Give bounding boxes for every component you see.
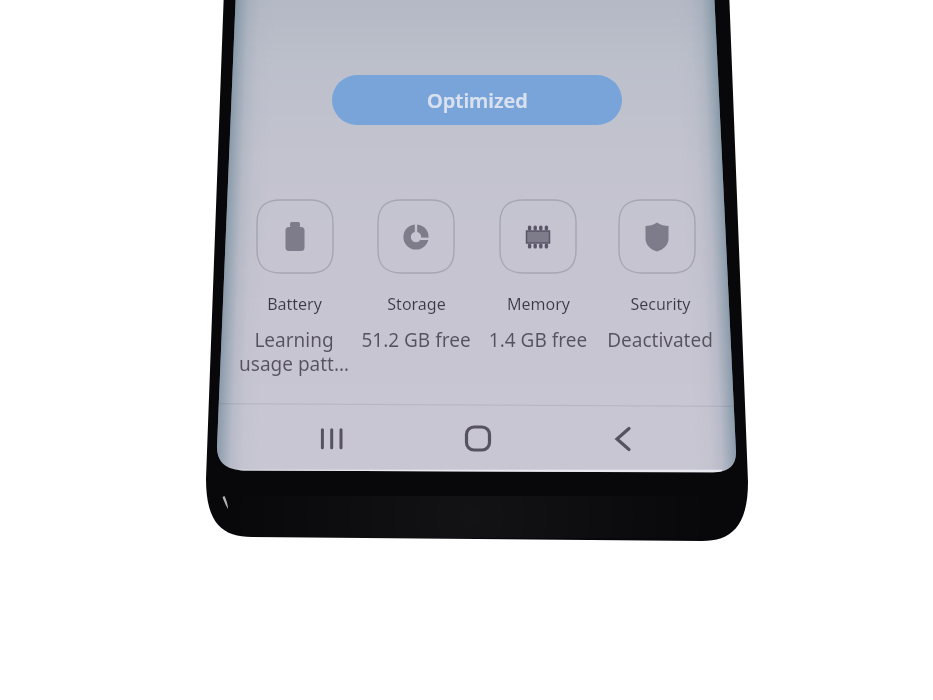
button[interactable]: Optimized [332, 75, 622, 125]
button[interactable]: Battery [232, 199, 356, 376]
staticText: 1.4 GB free [476, 327, 600, 353]
staticText: Security [630, 293, 691, 315]
staticText: Storage [387, 293, 446, 315]
button[interactable]: Storage [354, 199, 478, 353]
staticText: Memory [507, 293, 570, 315]
staticText: Battery [267, 293, 322, 315]
staticText: 51.2 GB free [354, 327, 478, 353]
button[interactable]: Home [406, 406, 551, 470]
button[interactable]: Memory [476, 199, 600, 353]
button[interactable]: Back [551, 406, 696, 470]
button[interactable]: Recents [261, 406, 406, 470]
staticText: Optimized [427, 87, 528, 114]
button[interactable]: Security [598, 199, 722, 353]
staticText: Learning usage patt… [232, 327, 356, 376]
staticText: Deactivated [598, 327, 722, 353]
